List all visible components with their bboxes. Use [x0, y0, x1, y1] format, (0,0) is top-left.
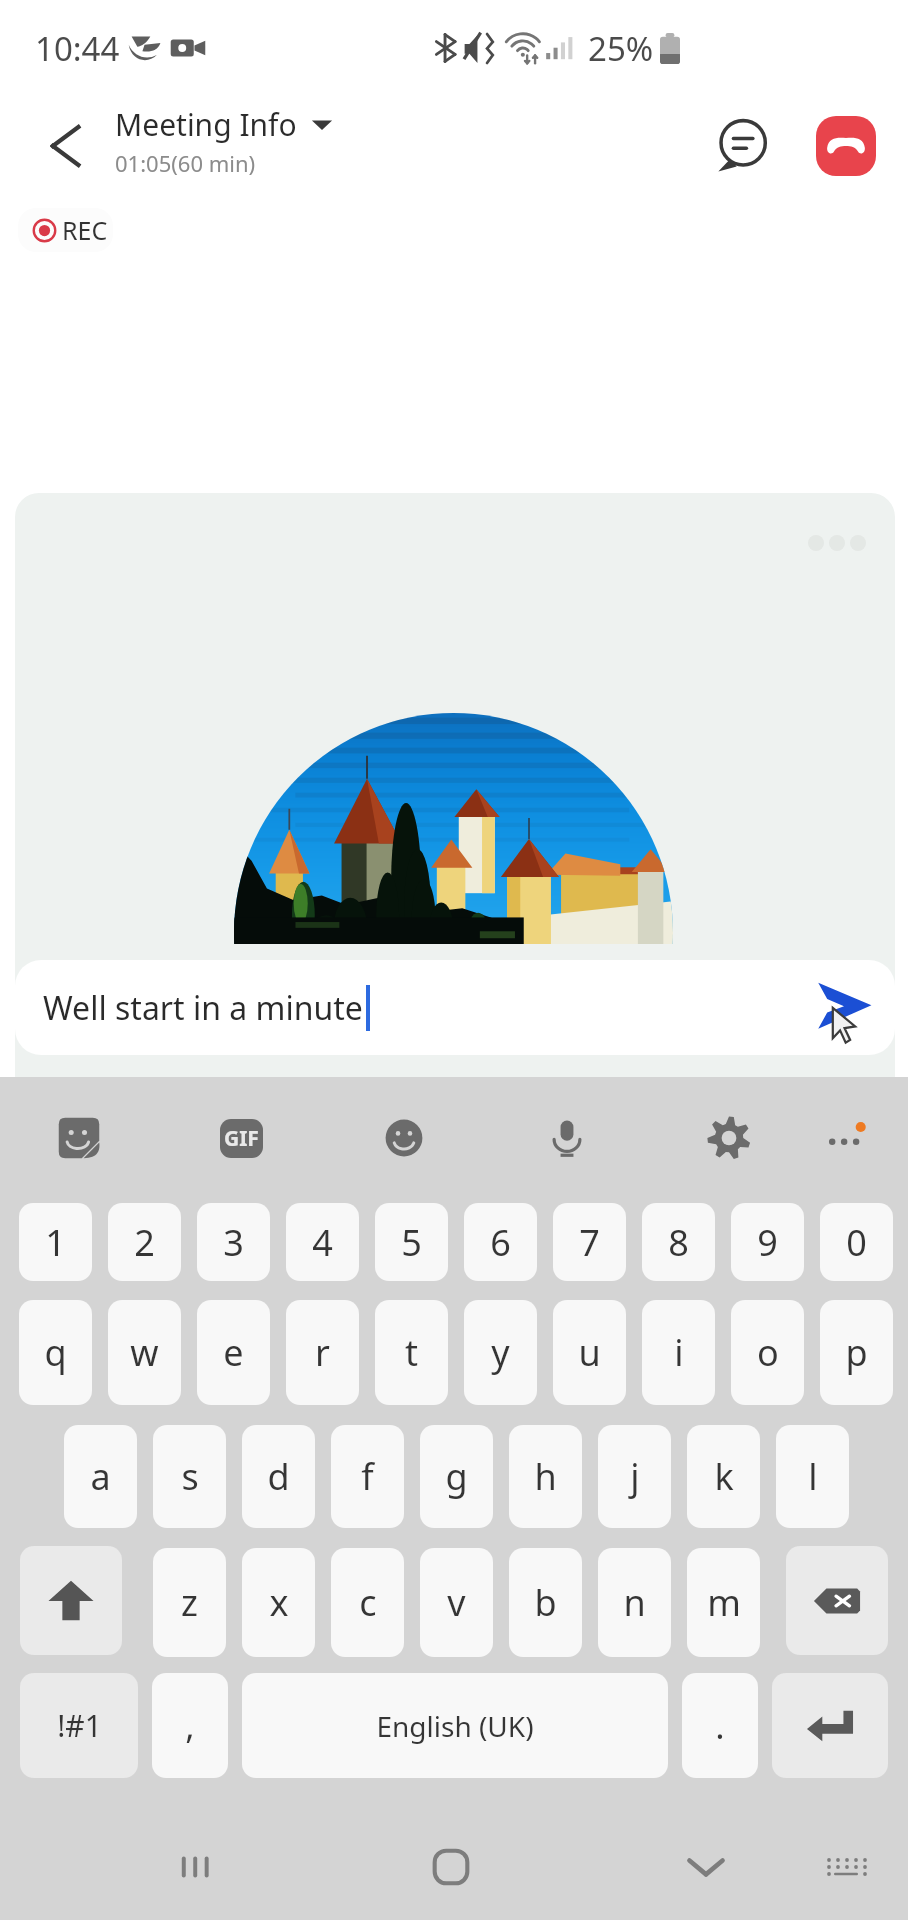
staticText: b — [534, 1578, 557, 1627]
button[interactable]: Well start in a minute — [15, 960, 895, 1055]
button[interactable]: y — [464, 1300, 537, 1405]
staticText: 0 — [846, 1218, 867, 1267]
button[interactable]: Switch keyboard — [809, 1829, 885, 1905]
button[interactable]: Backspace — [786, 1546, 888, 1655]
staticText: h — [534, 1452, 557, 1501]
staticText: 7 — [579, 1218, 600, 1267]
button[interactable]: s — [153, 1425, 226, 1528]
staticText: s — [181, 1452, 199, 1501]
button[interactable]: i — [642, 1300, 715, 1405]
staticText: r — [315, 1328, 330, 1377]
staticText: f — [361, 1452, 374, 1501]
button[interactable]: w — [108, 1300, 181, 1405]
staticText: z — [181, 1578, 198, 1627]
button[interactable]: a — [64, 1425, 137, 1528]
staticText: t — [405, 1328, 418, 1377]
staticText: d — [267, 1452, 290, 1501]
staticText: y — [491, 1328, 510, 1377]
staticText: 2 — [134, 1218, 155, 1267]
button[interactable]: 4 — [286, 1203, 359, 1281]
staticText: q — [44, 1328, 67, 1377]
staticText: p — [845, 1328, 868, 1377]
button[interactable]: l — [776, 1425, 849, 1528]
button[interactable]: 5 — [375, 1203, 448, 1281]
staticText: Meeting Info — [115, 104, 297, 145]
button[interactable]: Send — [811, 975, 877, 1041]
button[interactable]: z — [153, 1548, 226, 1657]
button[interactable]: 3 — [197, 1203, 270, 1281]
button[interactable]: Home — [413, 1829, 489, 1905]
button[interactable]: Emoji — [369, 1103, 439, 1173]
button[interactable]: d — [242, 1425, 315, 1528]
button[interactable]: b — [509, 1548, 582, 1657]
staticText: , — [185, 1702, 195, 1750]
staticText: x — [269, 1578, 289, 1627]
button[interactable]: j — [598, 1425, 671, 1528]
staticText: !#1 — [57, 1705, 102, 1746]
button[interactable]: Hide keyboard — [668, 1829, 744, 1905]
staticText: . — [715, 1702, 725, 1750]
button[interactable]: x — [242, 1548, 315, 1657]
staticText: 8 — [668, 1218, 689, 1267]
button[interactable]: !#1 — [20, 1673, 138, 1778]
staticText: GIF — [224, 1124, 259, 1153]
button[interactable]: 0 — [820, 1203, 893, 1281]
staticText: o — [757, 1328, 779, 1377]
button[interactable]: c — [331, 1548, 404, 1657]
button[interactable]: Voice input — [532, 1103, 602, 1173]
button[interactable]: r — [286, 1300, 359, 1405]
button[interactable]: 9 — [731, 1203, 804, 1281]
button[interactable]: g — [420, 1425, 493, 1528]
staticText: REC — [62, 213, 108, 247]
button[interactable]: m — [687, 1548, 760, 1657]
button[interactable]: Meeting Info — [115, 104, 333, 145]
staticText: 4 — [312, 1218, 333, 1267]
button[interactable]: 1 — [19, 1203, 92, 1281]
button[interactable]: e — [197, 1300, 270, 1405]
staticText: e — [223, 1328, 244, 1377]
button[interactable]: 8 — [642, 1203, 715, 1281]
button[interactable]: 7 — [553, 1203, 626, 1281]
button[interactable]: u — [553, 1300, 626, 1405]
staticText: 1 — [45, 1218, 66, 1267]
staticText: English (UK) — [376, 1707, 534, 1745]
button[interactable]: Enter — [772, 1673, 888, 1778]
staticText: 6 — [490, 1218, 511, 1267]
staticText: k — [714, 1452, 734, 1501]
button[interactable]: t — [375, 1300, 448, 1405]
button[interactable]: Shift — [20, 1546, 122, 1655]
button[interactable]: v — [420, 1548, 493, 1657]
button[interactable]: 6 — [464, 1203, 537, 1281]
button[interactable]: . — [682, 1673, 758, 1778]
staticText: j — [630, 1452, 640, 1501]
staticText: c — [359, 1578, 377, 1627]
button[interactable]: More options — [811, 1103, 881, 1173]
button[interactable]: p — [820, 1300, 893, 1405]
staticText: 9 — [757, 1218, 778, 1267]
button[interactable]: Keyboard settings — [694, 1103, 764, 1173]
button[interactable]: k — [687, 1425, 760, 1528]
staticText: 01:05(60 min) — [115, 148, 256, 178]
button[interactable]: q — [19, 1300, 92, 1405]
button[interactable]: o — [731, 1300, 804, 1405]
staticText: 25% — [588, 26, 654, 71]
staticText: m — [707, 1578, 741, 1627]
button[interactable]: f — [331, 1425, 404, 1528]
button[interactable]: GIF — [206, 1103, 276, 1173]
button[interactable]: REC — [18, 208, 113, 252]
staticText: 3 — [223, 1218, 244, 1267]
button[interactable]: End call — [816, 116, 876, 176]
staticText: w — [130, 1328, 159, 1377]
button[interactable]: Recents — [157, 1829, 233, 1905]
button[interactable]: n — [598, 1548, 671, 1657]
staticText: l — [808, 1452, 818, 1501]
button[interactable]: h — [509, 1425, 582, 1528]
staticText: Well start in a minute — [43, 986, 363, 1030]
button[interactable]: English (UK) — [242, 1673, 668, 1778]
button[interactable]: Sticker — [44, 1103, 114, 1173]
button[interactable]: , — [152, 1673, 228, 1778]
staticText: n — [623, 1578, 646, 1627]
button[interactable]: 2 — [108, 1203, 181, 1281]
button[interactable]: Back — [34, 115, 96, 177]
button[interactable]: Chat — [705, 110, 777, 182]
